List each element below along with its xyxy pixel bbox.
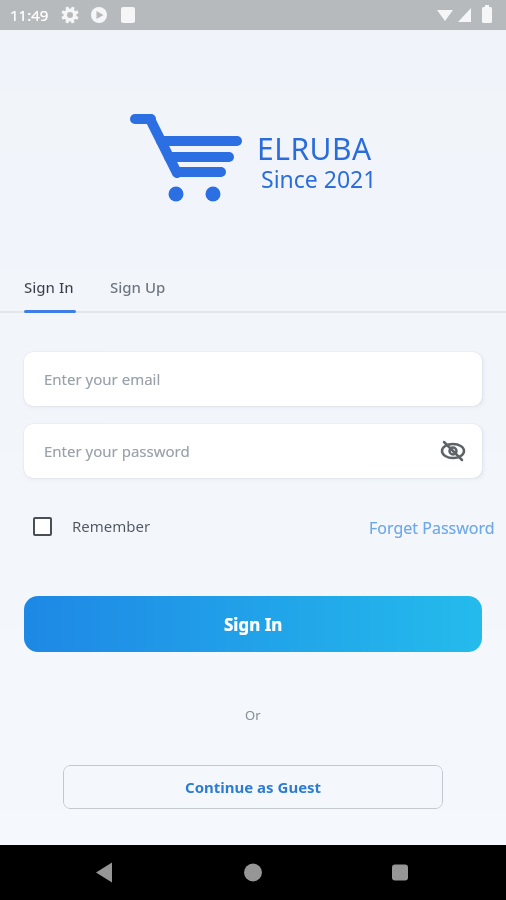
button[interactable]: Remember (33, 516, 151, 536)
button[interactable]: Continue as Guest (63, 765, 443, 809)
button[interactable]: Enter your email (24, 352, 482, 406)
staticText: 11:49 (10, 5, 49, 25)
staticText: Remember (72, 516, 151, 536)
staticText: Sign Up (110, 277, 166, 297)
button[interactable] (128, 112, 243, 212)
staticText: Forget Password (369, 517, 495, 539)
staticText: Sign In (24, 277, 74, 297)
staticText: Enter your password (44, 441, 190, 461)
button[interactable]: Sign Up (110, 277, 170, 303)
staticText: ELRUBA (257, 128, 372, 169)
staticText: Continue as Guest (185, 777, 322, 797)
staticText: Enter your email (44, 369, 161, 389)
staticText: Sign In (224, 613, 283, 636)
button[interactable]: Sign In (24, 277, 84, 303)
button[interactable] (440, 438, 466, 464)
button[interactable]: Forget Password (369, 517, 495, 539)
button[interactable]: Enter your password (24, 424, 482, 478)
staticText: Since 2021 (261, 163, 377, 194)
button[interactable]: Sign In (24, 596, 482, 652)
staticText: Or (245, 706, 261, 724)
